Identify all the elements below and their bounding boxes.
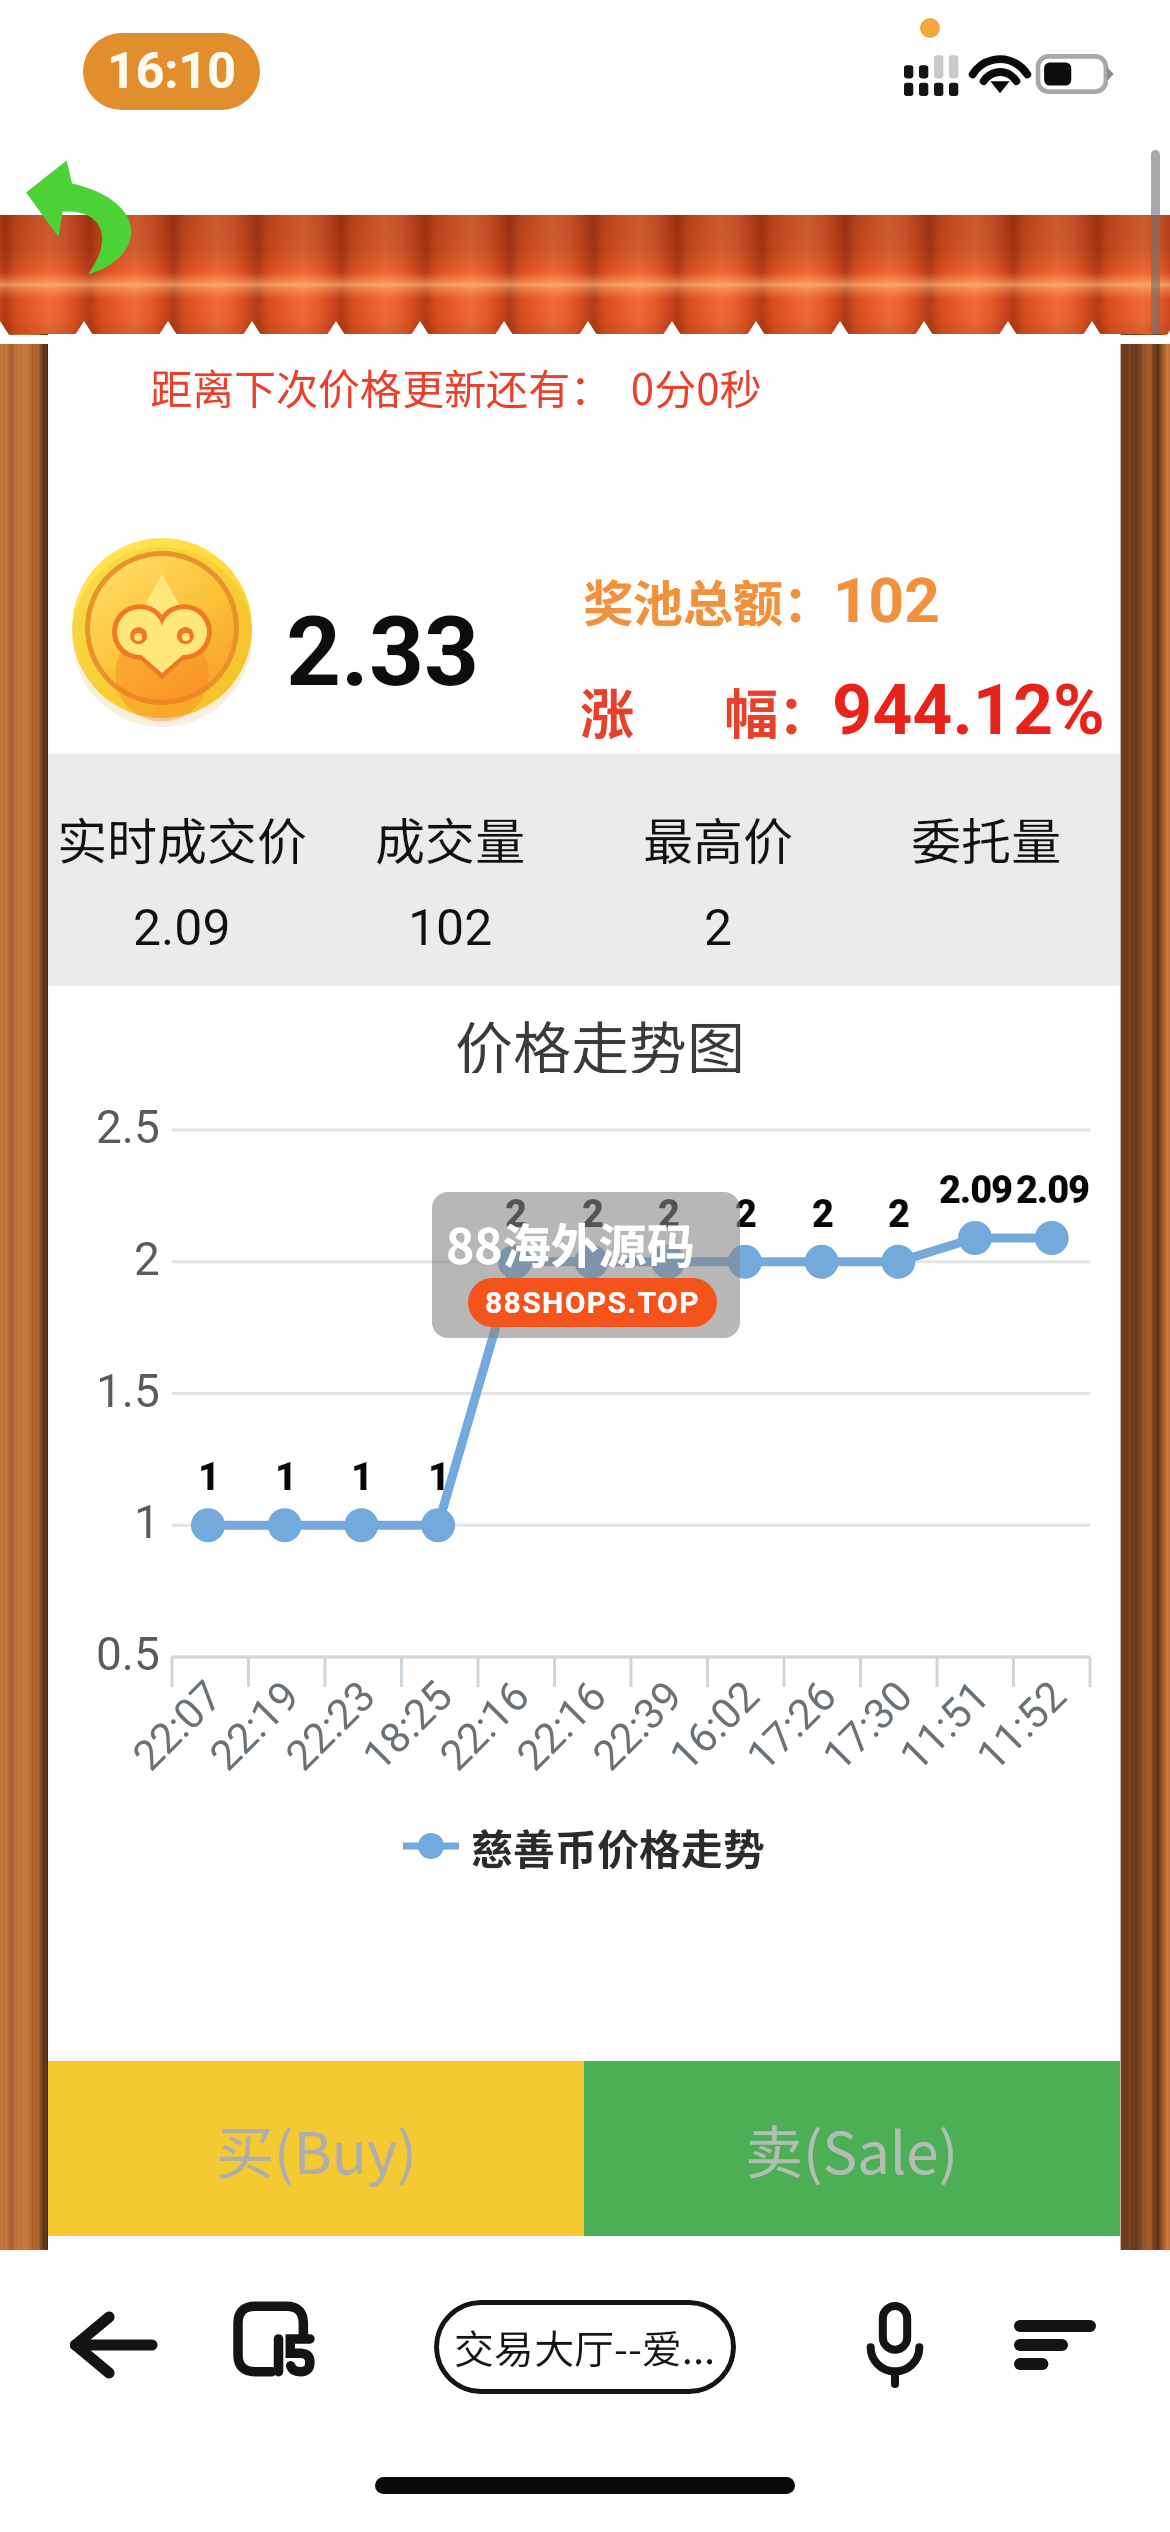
staticText: 2 bbox=[505, 1192, 526, 1237]
staticText: 2 bbox=[582, 1192, 603, 1237]
staticText: 距离下次价格更新还有： 0分0秒 bbox=[150, 356, 762, 416]
staticText: 22:23 bbox=[276, 1671, 385, 1780]
staticText: 22:07 bbox=[123, 1671, 232, 1780]
staticText: 最高价 bbox=[643, 802, 793, 874]
staticText: 交易大厅--爱... bbox=[454, 2318, 716, 2376]
staticText: 16:02 bbox=[660, 1671, 769, 1780]
staticText: 2.09 bbox=[939, 1168, 1012, 1213]
staticText: 1 bbox=[428, 1455, 449, 1500]
staticText: 0.5 bbox=[96, 1627, 160, 1681]
staticText: 16:10 bbox=[107, 42, 236, 101]
staticText: 2.09 bbox=[133, 899, 231, 958]
staticText: 1 bbox=[134, 1495, 160, 1549]
staticText: 实时成交价 bbox=[57, 802, 307, 874]
staticText: 88海外源码 bbox=[446, 1208, 695, 1278]
staticText: 奖池总额： bbox=[583, 564, 833, 636]
button[interactable]: Tabs, 15 open bbox=[226, 2290, 336, 2400]
staticText: 102 bbox=[408, 899, 493, 958]
staticText: 2.09 bbox=[1016, 1168, 1089, 1213]
button[interactable]: Go back bbox=[18, 158, 153, 286]
staticText: 2 bbox=[888, 1192, 909, 1237]
staticText: 2.33 bbox=[286, 596, 480, 709]
staticText: 2 bbox=[735, 1192, 756, 1237]
staticText: 价格走势图 bbox=[455, 1003, 746, 1073]
staticText: 2 bbox=[812, 1192, 833, 1237]
button[interactable]: Voice search bbox=[840, 2290, 950, 2400]
staticText: 2 bbox=[134, 1232, 160, 1286]
staticText: 2 bbox=[704, 899, 733, 958]
staticText: 944.12% bbox=[832, 669, 1105, 751]
staticText: 22:19 bbox=[200, 1671, 309, 1780]
staticText: 22:39 bbox=[583, 1671, 692, 1780]
staticText: 1 bbox=[351, 1455, 372, 1500]
staticText: 1 bbox=[275, 1455, 296, 1500]
staticText: 成交量 bbox=[375, 802, 525, 874]
button[interactable]: 交易大厅--爱... bbox=[434, 2300, 736, 2394]
staticText: 卖(Sale) bbox=[745, 2107, 959, 2191]
staticText: 102 bbox=[833, 564, 940, 637]
staticText: 慈善币价格走势 bbox=[471, 1816, 766, 1876]
staticText: 2.5 bbox=[96, 1100, 160, 1154]
staticText: 1 bbox=[198, 1455, 219, 1500]
staticText: 18:25 bbox=[353, 1671, 462, 1780]
staticText: 1.5 bbox=[96, 1364, 160, 1418]
button[interactable]: Menu bbox=[1000, 2290, 1110, 2400]
staticText: 11:52 bbox=[967, 1671, 1076, 1780]
staticText: 涨 bbox=[580, 671, 634, 749]
staticText: 22:16 bbox=[430, 1671, 539, 1780]
staticText: 22:16 bbox=[507, 1671, 616, 1780]
staticText: 11:51 bbox=[890, 1671, 999, 1780]
staticText: 2 bbox=[658, 1192, 679, 1237]
button[interactable]: 卖(Sale) bbox=[584, 2061, 1120, 2236]
button[interactable]: Back bbox=[58, 2290, 168, 2400]
button[interactable]: 买(Buy) bbox=[48, 2061, 584, 2236]
staticText: 17:30 bbox=[813, 1671, 922, 1780]
staticText: 买(Buy) bbox=[216, 2107, 417, 2191]
staticText: 17:26 bbox=[737, 1671, 846, 1780]
staticText: 委托量 bbox=[911, 802, 1061, 874]
staticText: 88SHOPS.TOP bbox=[485, 1285, 700, 1320]
staticText: 幅： bbox=[724, 671, 832, 749]
